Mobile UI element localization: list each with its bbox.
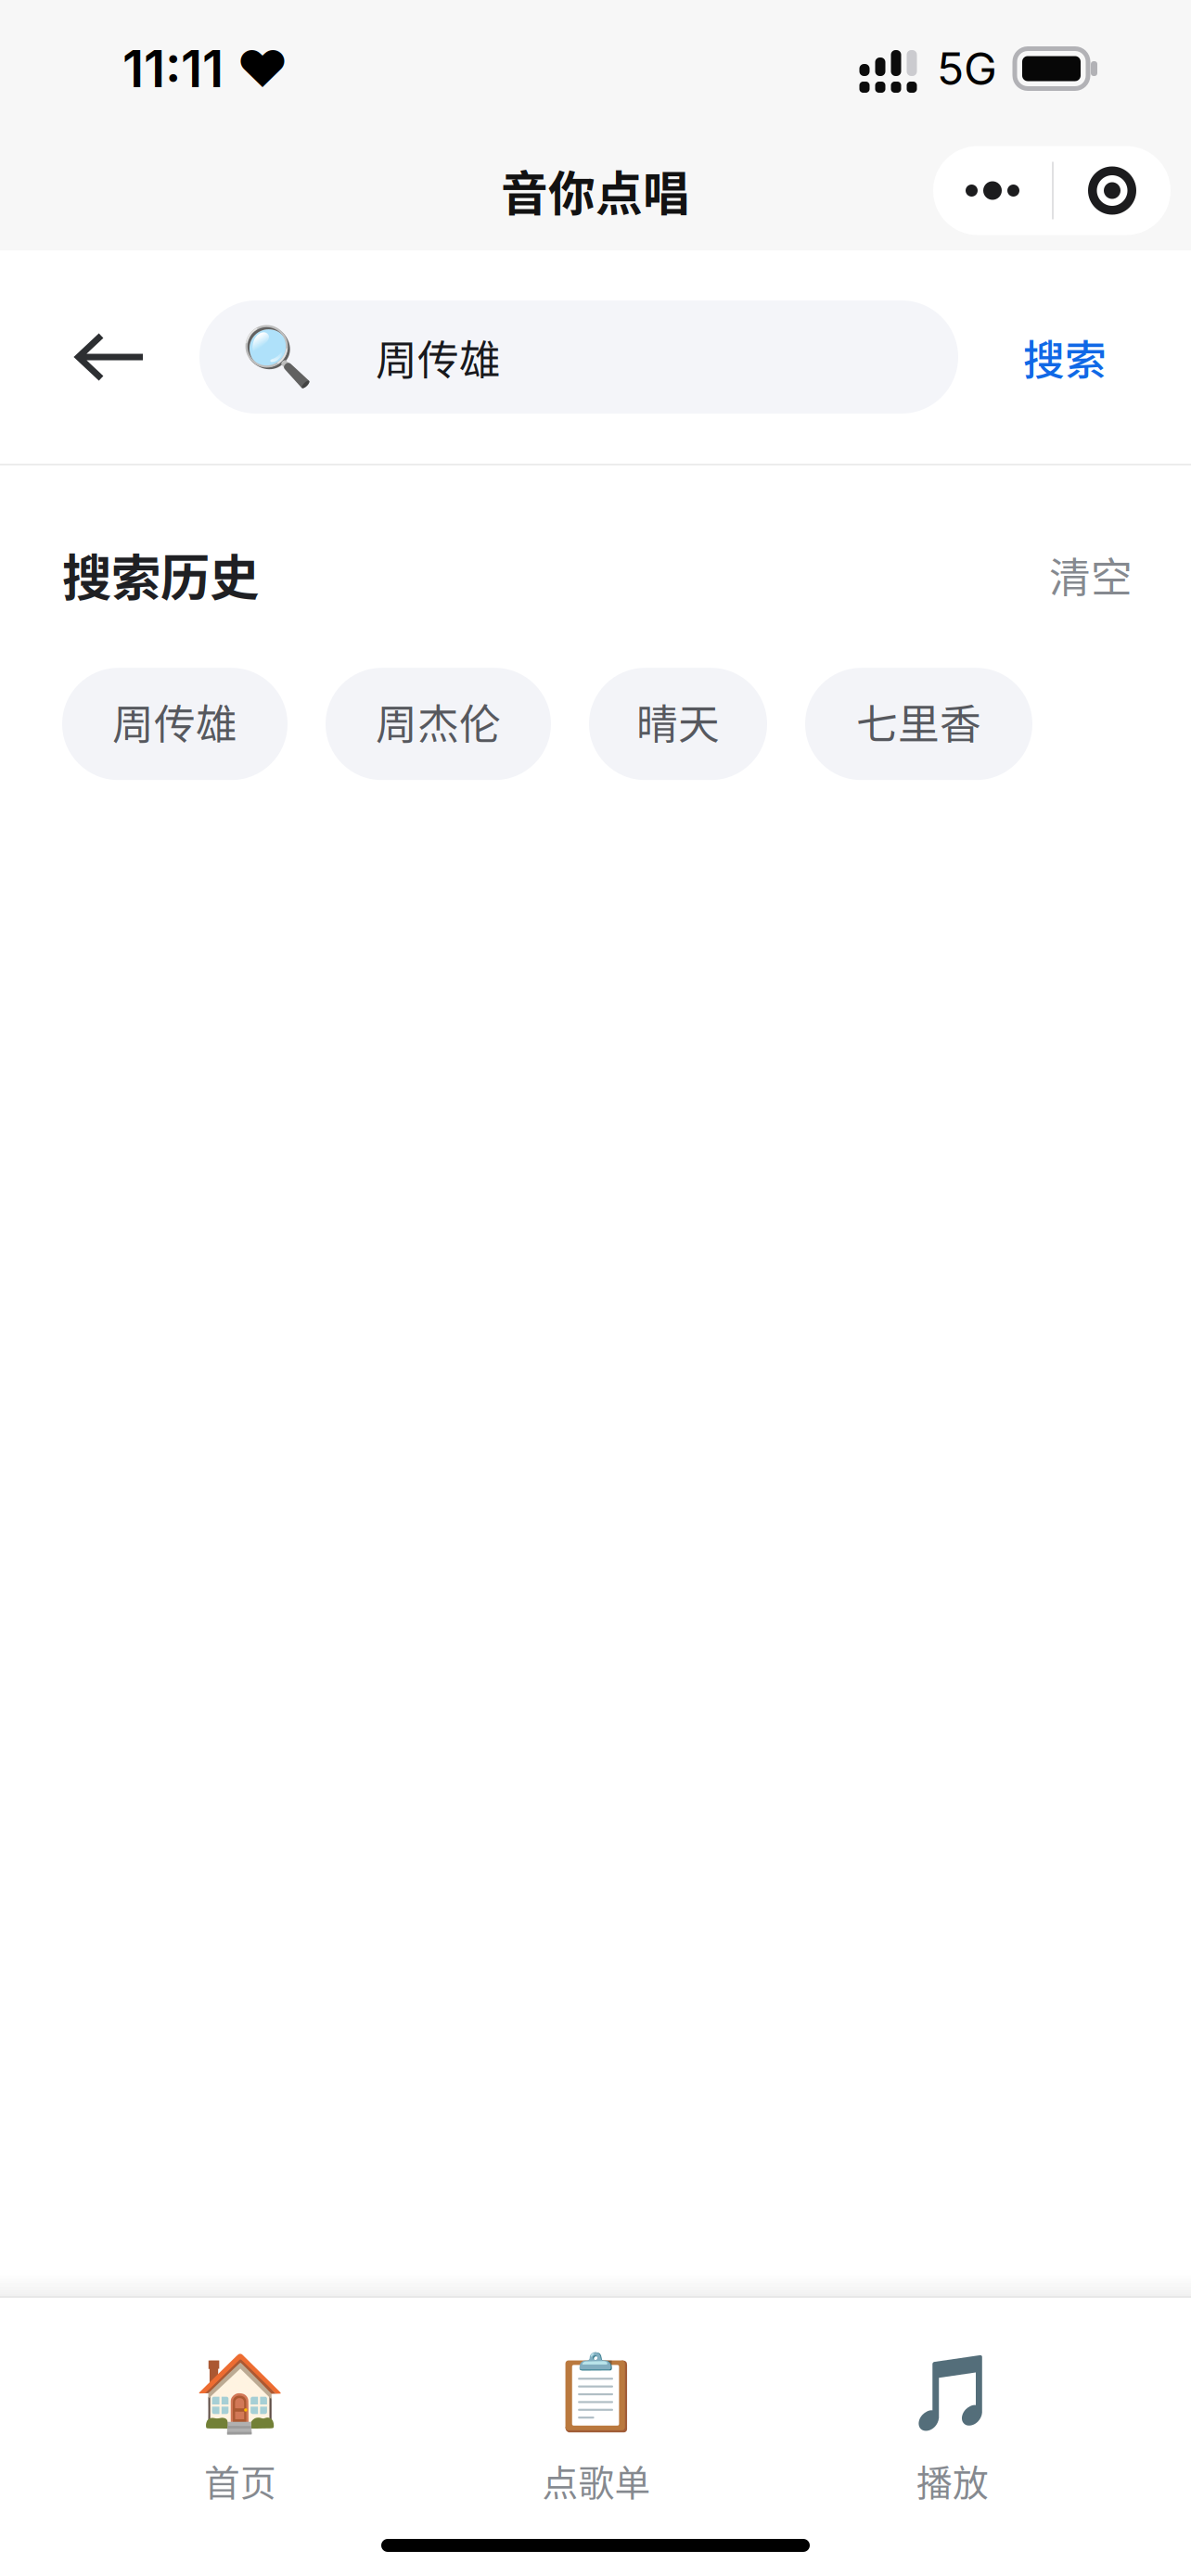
- button[interactable]: 🏠: [62, 2355, 418, 2507]
- staticText: 周传雄: [112, 691, 237, 751]
- staticText: 周传雄: [376, 327, 501, 387]
- button[interactable]: Back: [60, 300, 199, 414]
- staticText: 清空: [1049, 545, 1133, 605]
- staticText: 音你点唱: [501, 157, 690, 225]
- staticText: 搜索: [1023, 327, 1107, 387]
- button[interactable]: 🎵: [775, 2355, 1131, 2507]
- button[interactable]: 🔍: [199, 300, 958, 414]
- button[interactable]: Close mini program: [1054, 146, 1171, 235]
- button[interactable]: 周传雄: [62, 668, 288, 780]
- button[interactable]: 搜索: [1023, 300, 1107, 414]
- staticText: 首页: [204, 2455, 276, 2506]
- button[interactable]: 晴天: [589, 668, 767, 780]
- staticText: 晴天: [636, 691, 720, 751]
- staticText: 周杰伦: [376, 691, 501, 751]
- staticText: 播放: [916, 2455, 989, 2506]
- button[interactable]: 周杰伦: [326, 668, 551, 780]
- staticText: 📋: [550, 2350, 643, 2437]
- button[interactable]: 清空: [1049, 545, 1133, 605]
- staticText: 🎵: [906, 2350, 999, 2437]
- staticText: 5G: [937, 42, 997, 96]
- button[interactable]: 七里香: [805, 668, 1032, 780]
- staticText: 七里香: [856, 691, 981, 751]
- staticText: 🔍: [241, 323, 314, 391]
- staticText: 点歌单: [542, 2455, 651, 2506]
- button[interactable]: More: [933, 146, 1052, 235]
- button[interactable]: 📋: [418, 2355, 775, 2507]
- staticText: 搜索历史: [62, 539, 259, 610]
- staticText: 11:11 ♥: [122, 38, 288, 99]
- staticText: 🏠: [194, 2350, 287, 2437]
